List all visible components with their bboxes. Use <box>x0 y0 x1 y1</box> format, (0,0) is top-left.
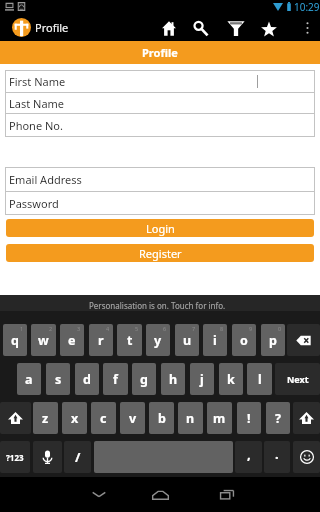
button[interactable]: Last Name <box>5 93 315 113</box>
button[interactable]: Voice input <box>33 441 62 473</box>
button[interactable]: Email Address <box>5 167 315 191</box>
staticText: 2 <box>49 325 53 332</box>
button[interactable]: k <box>219 363 243 395</box>
button[interactable]: n <box>178 402 203 434</box>
button[interactable]: Phone No. <box>5 114 315 137</box>
button[interactable]: Home <box>130 477 190 512</box>
button[interactable]: Recent apps <box>197 477 257 512</box>
staticText: r <box>98 332 104 349</box>
button[interactable]: Profile <box>0 14 90 41</box>
button[interactable]: t <box>117 324 142 356</box>
staticText: 9 <box>249 325 253 332</box>
staticText: q <box>11 332 19 349</box>
staticText: m <box>213 410 226 427</box>
staticText: Email Address <box>9 172 82 187</box>
staticText: / <box>75 448 81 466</box>
button[interactable]: a <box>17 363 41 395</box>
button[interactable]: Backspace <box>287 324 320 356</box>
button[interactable]: Password <box>5 192 315 215</box>
button[interactable]: Emoji <box>293 441 320 473</box>
staticText: v <box>129 410 137 427</box>
staticText: 0 <box>278 325 282 332</box>
button[interactable]: / <box>64 441 91 473</box>
button[interactable]: r <box>89 324 113 356</box>
staticText: Next <box>287 373 309 385</box>
button[interactable]: f <box>103 363 128 395</box>
staticText: Profile <box>142 45 178 60</box>
button[interactable]: Filter <box>222 14 250 41</box>
button[interactable]: Register <box>6 244 314 262</box>
button[interactable]: o <box>232 324 256 356</box>
staticText: p <box>269 332 277 349</box>
staticText: l <box>258 371 262 388</box>
staticText: 1 <box>20 325 24 332</box>
button[interactable]: l <box>247 363 272 395</box>
button[interactable]: ! <box>237 402 261 434</box>
button[interactable]: . <box>264 441 290 473</box>
staticText: c <box>100 410 107 427</box>
button[interactable]: Next <box>275 363 320 395</box>
button[interactable]: u <box>175 324 199 356</box>
button[interactable]: Login <box>6 219 314 237</box>
staticText: e <box>68 332 76 349</box>
button[interactable]: v <box>120 402 145 434</box>
staticText: t <box>127 332 133 349</box>
button[interactable]: Search <box>186 14 214 41</box>
button[interactable]: x <box>62 402 87 434</box>
staticText: First Name <box>9 74 66 89</box>
staticText: o <box>240 332 248 349</box>
button[interactable]: First Name <box>5 70 315 92</box>
button[interactable]: ?123 <box>0 441 30 473</box>
staticText: Last Name <box>9 96 65 111</box>
staticText: ?123 <box>6 452 24 463</box>
button[interactable]: j <box>190 363 214 395</box>
button[interactable]: , <box>235 441 262 473</box>
staticText: x <box>71 410 79 427</box>
staticText: u <box>183 332 192 349</box>
staticText: . <box>275 445 279 463</box>
button[interactable]: w <box>31 324 56 356</box>
staticText: b <box>158 410 166 427</box>
button[interactable]: c <box>91 402 116 434</box>
button[interactable]: Home <box>154 14 183 41</box>
staticText: ? <box>275 410 281 427</box>
staticText: y <box>154 332 162 349</box>
staticText: 8 <box>220 325 224 332</box>
staticText: n <box>186 410 195 427</box>
staticText: Phone No. <box>9 118 63 133</box>
button[interactable]: p <box>261 324 285 356</box>
button[interactable]: b <box>149 402 174 434</box>
staticText: s <box>55 371 62 388</box>
button[interactable]: Shift <box>0 402 31 434</box>
button[interactable]: g <box>132 363 156 395</box>
staticText: 6 <box>163 325 167 332</box>
button[interactable]: e <box>60 324 84 356</box>
staticText: 7 <box>192 325 196 332</box>
staticText: f <box>113 371 118 388</box>
staticText: w <box>38 332 49 349</box>
staticText: Personalisation is on. Touch for info. <box>89 300 226 311</box>
button[interactable]: More options <box>294 14 320 41</box>
button[interactable]: q <box>3 324 27 356</box>
button[interactable]: z <box>33 402 58 434</box>
staticText: Login <box>146 221 175 236</box>
button[interactable]: i <box>203 324 227 356</box>
button[interactable]: Personalisation is on. Touch for info. <box>0 295 320 311</box>
staticText: d <box>83 371 91 388</box>
button[interactable]: Favourites <box>255 14 283 41</box>
staticText: i <box>213 332 217 349</box>
button[interactable]: Hide keyboard <box>69 477 129 512</box>
staticText: 10:29 <box>294 0 320 14</box>
button[interactable]: s <box>46 363 70 395</box>
button[interactable]: m <box>207 402 232 434</box>
button[interactable]: Shift <box>293 402 320 434</box>
staticText: ! <box>247 410 251 427</box>
button[interactable]: y <box>146 324 170 356</box>
button[interactable]: d <box>75 363 99 395</box>
staticText: 4 <box>106 325 110 332</box>
button[interactable]: ? <box>266 402 290 434</box>
staticText: 3 <box>77 325 81 332</box>
button[interactable]: h <box>161 363 185 395</box>
staticText: Password <box>9 196 59 211</box>
